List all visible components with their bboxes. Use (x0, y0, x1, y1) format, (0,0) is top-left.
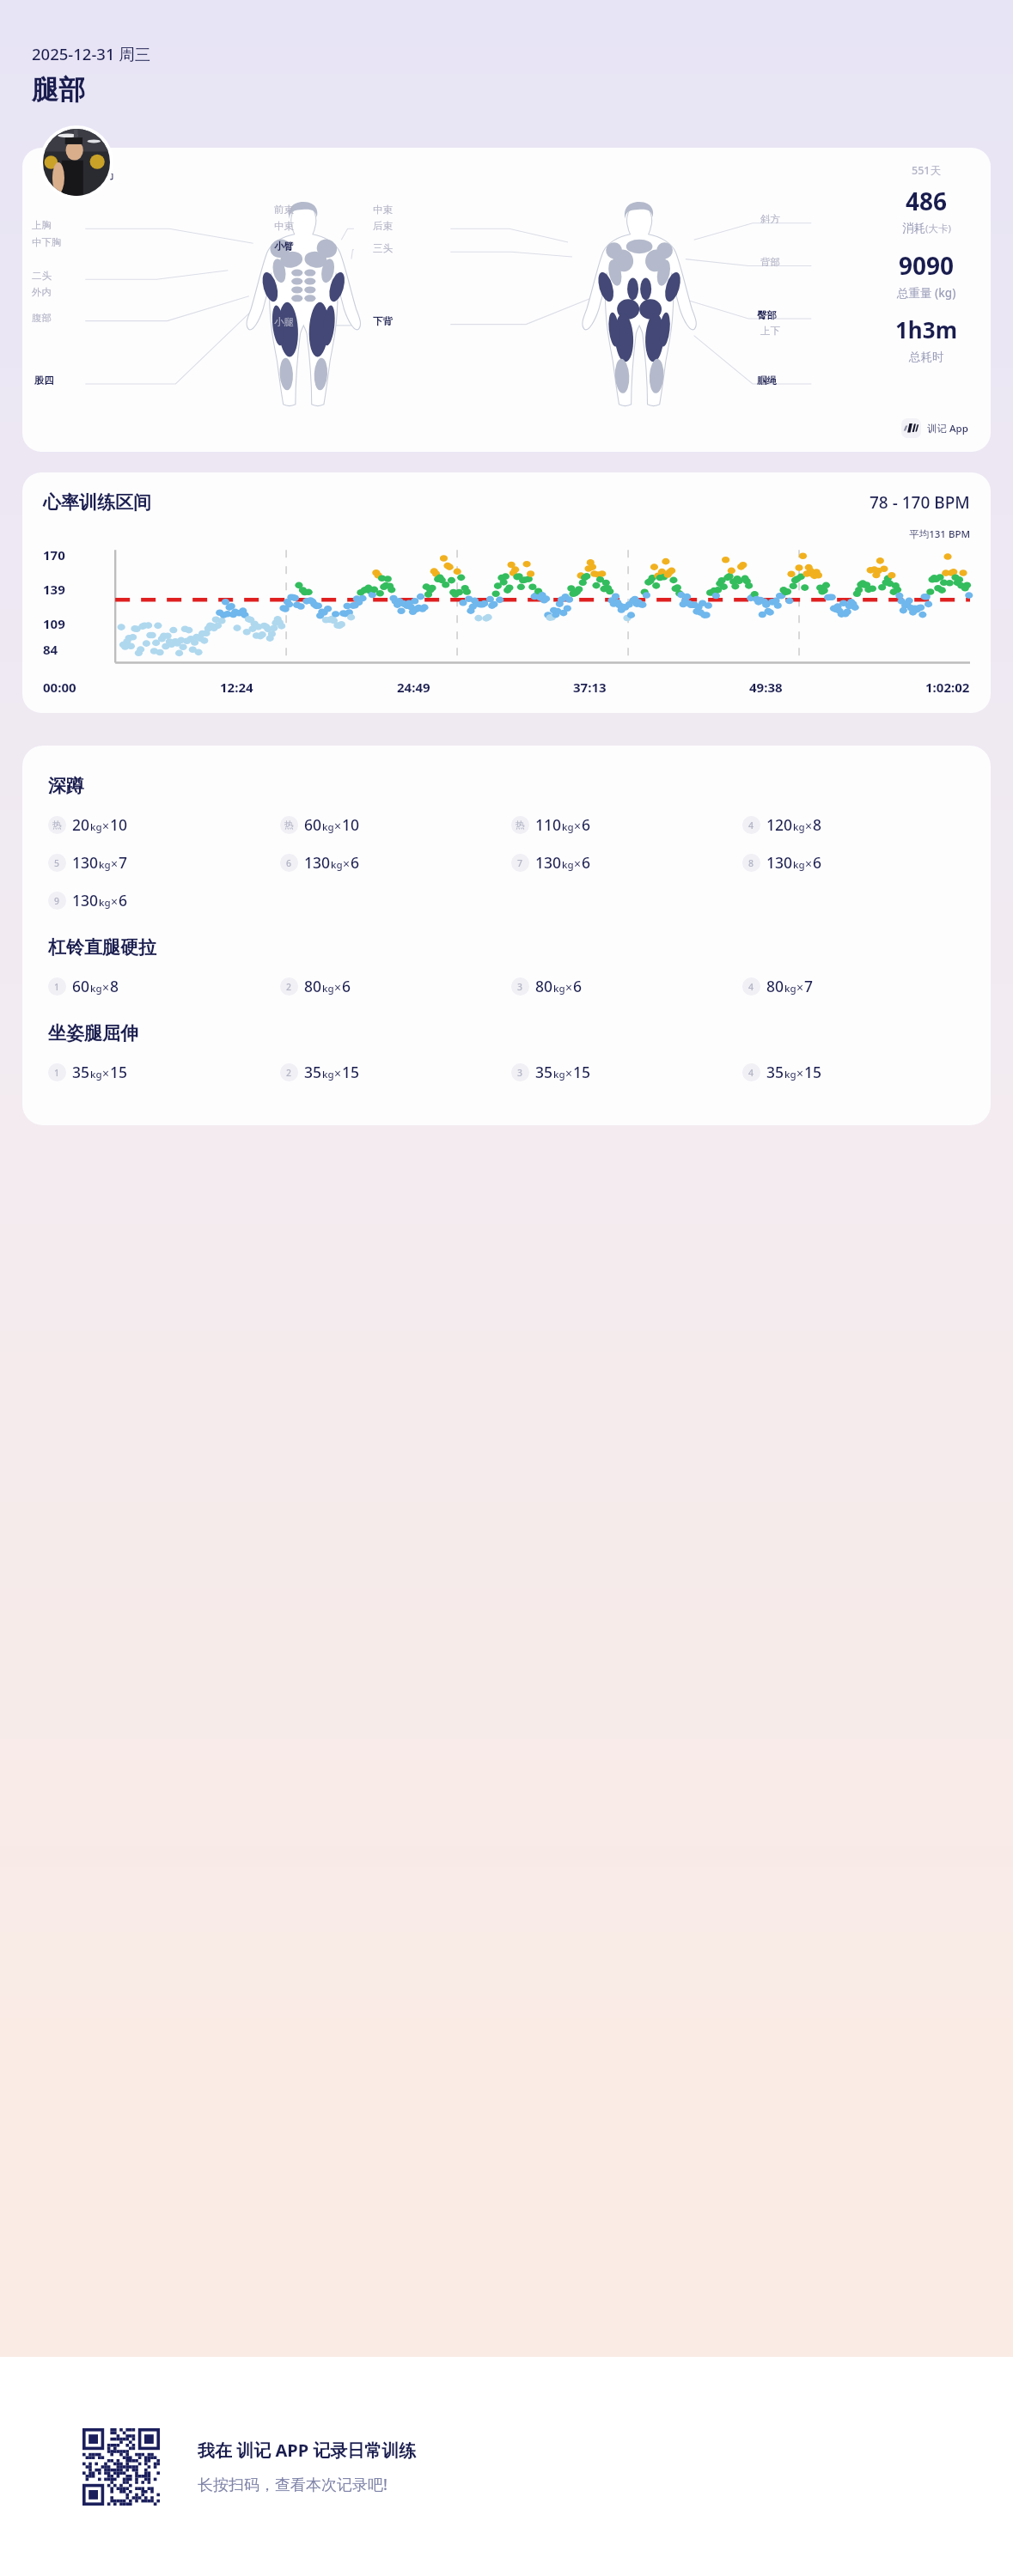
staticText: kg (90, 820, 102, 834)
staticText: 15 (342, 1062, 360, 1082)
staticText: 斜方 (760, 213, 780, 225)
staticText: 腿部 (32, 73, 85, 107)
staticText: × (796, 1065, 804, 1081)
staticText: 6 (286, 857, 292, 869)
staticText: 486 (906, 185, 948, 217)
staticText: 8 (110, 976, 119, 996)
staticText: × (574, 818, 582, 834)
staticText: 3 (517, 1067, 523, 1079)
staticText: × (805, 856, 813, 872)
staticText: 2025-12-31 周三 (32, 43, 151, 64)
staticText: 15 (573, 1062, 591, 1082)
staticText: 上下 (760, 325, 780, 337)
staticText: 消耗 (902, 221, 925, 235)
other: QR code (82, 2428, 160, 2506)
staticText: 长按扫码，查看本次记录吧! (198, 2474, 388, 2495)
staticText: 1 (54, 981, 60, 993)
staticText: 二头 (32, 270, 52, 282)
staticText: × (574, 856, 582, 872)
staticText: 小臂 (274, 241, 294, 253)
staticText: 130 (535, 852, 562, 873)
staticText: 4 (748, 819, 754, 831)
staticText: 训记 App (927, 422, 968, 435)
button[interactable]: 1 (48, 1060, 128, 1084)
staticText: 20 (72, 814, 90, 835)
staticText: kg (322, 820, 334, 834)
button[interactable]: 深蹲 (22, 746, 991, 1125)
button[interactable]: User avatar (40, 125, 113, 199)
button[interactable]: 3 (511, 974, 583, 998)
staticText: 我在 训记 APP 记录日常训练 (198, 2439, 417, 2462)
staticText: kg (90, 982, 102, 996)
button[interactable]: 8 (742, 850, 822, 874)
staticText: 6 (582, 814, 591, 835)
staticText: × (102, 818, 110, 834)
button[interactable]: 热 (48, 813, 128, 837)
staticText: 6 (342, 976, 351, 996)
staticText: 热 (52, 819, 62, 831)
staticText: 热 (516, 819, 525, 831)
staticText: × (565, 979, 573, 996)
button[interactable]: 4 (742, 974, 814, 998)
button[interactable]: 5 (48, 850, 128, 874)
staticText: × (343, 856, 351, 872)
button[interactable]: 热 (511, 813, 591, 837)
staticText: 总重量 (kg) (897, 285, 956, 301)
staticText: 35 (766, 1062, 784, 1082)
staticText: 背部 (760, 256, 780, 268)
staticText: × (111, 856, 119, 872)
staticText: 8 (813, 814, 822, 835)
staticText: kg (90, 1068, 102, 1081)
button[interactable]: 1 (48, 974, 119, 998)
button[interactable]: 雪昂 (22, 148, 991, 452)
staticText: 35 (72, 1062, 90, 1082)
staticText: 49:38 (749, 679, 783, 696)
button[interactable]: 9 (48, 888, 128, 912)
staticText: 35 (535, 1062, 553, 1082)
staticText: × (805, 818, 813, 834)
button[interactable]: 7 (511, 850, 591, 874)
staticText: 2 (286, 981, 292, 993)
staticText: 60 (72, 976, 90, 996)
button[interactable]: 热 (280, 813, 360, 837)
staticText: 7 (119, 852, 128, 873)
staticText: 6 (351, 852, 360, 873)
staticText: 6 (119, 890, 128, 910)
staticText: kg (322, 1068, 334, 1081)
staticText: 6 (582, 852, 591, 873)
staticText: 雪昂 (84, 165, 115, 185)
staticText: 心率训练区间 (43, 491, 151, 514)
staticText: 6 (813, 852, 822, 873)
staticText: × (102, 979, 110, 996)
staticText: 12:24 (220, 679, 253, 696)
staticText: 60 (304, 814, 322, 835)
button[interactable]: 4 (742, 1060, 822, 1084)
staticText: 3 (517, 981, 523, 993)
button[interactable]: 4 (742, 813, 822, 837)
staticText: 00:00 (43, 679, 76, 696)
staticText: × (334, 1065, 342, 1081)
button[interactable]: QR code (0, 2357, 1013, 2576)
staticText: 深蹲 (48, 775, 84, 797)
button[interactable]: 6 (280, 850, 360, 874)
staticText: kg (99, 896, 111, 910)
staticText: 110 (535, 814, 562, 835)
staticText: kg (553, 1068, 565, 1081)
staticText: 热 (284, 819, 294, 831)
button[interactable]: 2 (280, 974, 351, 998)
button[interactable]: 3 (511, 1060, 591, 1084)
staticText: 前束 (274, 204, 294, 216)
staticText: 小腿 (274, 316, 294, 328)
staticText: × (334, 818, 342, 834)
staticText: 130 (766, 852, 793, 873)
staticText: 109 (43, 615, 65, 632)
staticText: (大卡) (925, 222, 951, 235)
button[interactable]: 2 (280, 1060, 360, 1084)
staticText: 三头 (373, 242, 393, 254)
staticText: 7 (517, 857, 523, 869)
staticText: 120 (766, 814, 793, 835)
staticText: 腹部 (32, 312, 52, 324)
button[interactable]: 心率训练区间 (22, 472, 991, 713)
staticText: 15 (804, 1062, 822, 1082)
staticText: 80 (304, 976, 322, 996)
